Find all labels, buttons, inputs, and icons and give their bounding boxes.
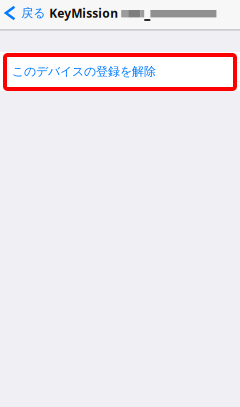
button[interactable]: このデバイスの登録を解除 bbox=[0, 52, 240, 91]
button[interactable]: 戻る bbox=[0, 0, 49, 26]
staticText: このデバイスの登録を解除 bbox=[12, 64, 156, 79]
staticText: KeyMission bbox=[49, 5, 118, 21]
staticText: 戻る bbox=[21, 6, 45, 20]
